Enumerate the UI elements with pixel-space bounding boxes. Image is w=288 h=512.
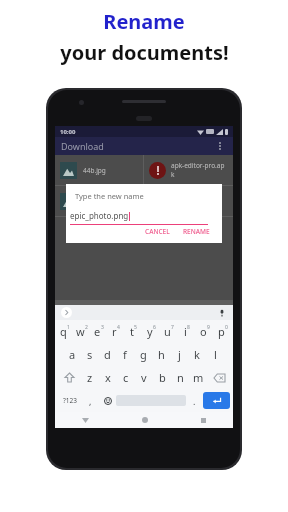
button[interactable]: h <box>152 343 170 366</box>
button[interactable]: Emoji <box>99 389 116 412</box>
button[interactable]: More options <box>213 139 227 153</box>
staticText: k <box>194 347 200 362</box>
staticText: p <box>218 324 225 339</box>
staticText: 0 <box>225 324 228 331</box>
staticText: v <box>141 370 147 385</box>
staticText: b <box>159 370 166 385</box>
staticText: i <box>184 324 187 339</box>
staticText: 9 <box>207 324 210 331</box>
button[interactable] <box>55 186 143 216</box>
button[interactable]: 44b.jpg <box>55 155 143 185</box>
button[interactable]: c <box>117 366 135 389</box>
staticText: m <box>193 370 204 385</box>
button[interactable]: g <box>134 343 152 366</box>
button[interactable]: p <box>214 320 232 343</box>
button[interactable]: o <box>196 320 214 343</box>
staticText: Rename <box>103 8 185 35</box>
staticText: 4 <box>117 324 120 331</box>
staticText: , <box>89 395 92 407</box>
staticText: 10:00 <box>60 128 76 136</box>
staticText: a <box>69 347 76 362</box>
staticText: t <box>130 324 134 339</box>
staticText: epic_photo.png <box>70 210 129 221</box>
staticText: z <box>87 370 93 385</box>
button[interactable]: Recents <box>174 412 233 428</box>
button[interactable]: e <box>90 320 107 343</box>
button[interactable]: u <box>160 320 178 343</box>
button[interactable]: q <box>56 320 73 343</box>
staticText: n <box>177 370 184 385</box>
staticText: u <box>164 324 171 339</box>
staticText: g <box>140 347 147 362</box>
staticText: 44b.jpg <box>83 166 106 175</box>
staticText: 5 <box>134 324 137 331</box>
button[interactable]: s <box>81 343 98 366</box>
button[interactable]: l <box>206 343 224 366</box>
button[interactable]: i <box>178 320 196 343</box>
staticText: y <box>147 324 153 339</box>
button[interactable]: r <box>107 320 124 343</box>
staticText: e <box>94 324 101 339</box>
staticText: x <box>105 370 111 385</box>
button[interactable]: ?123 <box>58 389 82 412</box>
button[interactable]: w <box>73 320 90 343</box>
button[interactable]: z <box>81 366 99 389</box>
button[interactable]: y <box>142 320 160 343</box>
staticText: your documents! <box>60 39 229 66</box>
button[interactable]: n <box>171 366 189 389</box>
button[interactable]: Back <box>55 412 115 428</box>
staticText: w <box>76 324 85 339</box>
button[interactable]: Expand <box>61 307 72 318</box>
button[interactable]: . <box>186 389 203 412</box>
button[interactable]: Enter <box>203 392 230 409</box>
button[interactable]: b <box>153 366 171 389</box>
button[interactable]: v <box>135 366 153 389</box>
staticText: q <box>60 324 67 339</box>
staticText: r <box>112 324 117 339</box>
staticText: c <box>123 370 129 385</box>
button[interactable]: RENAME <box>180 225 213 238</box>
button[interactable]: j <box>170 343 188 366</box>
staticText: 2 <box>85 324 88 331</box>
staticText: RENAME <box>183 227 210 236</box>
staticText: h <box>158 347 165 362</box>
button[interactable]: apk-editor-pro.ap k <box>144 155 233 185</box>
button[interactable]: f <box>116 343 134 366</box>
staticText: 3 <box>101 324 104 331</box>
staticText: s <box>87 347 93 362</box>
staticText: CANCEL <box>145 227 170 236</box>
button[interactable]: k <box>188 343 206 366</box>
staticText: 6 <box>153 324 156 331</box>
button[interactable]: Home <box>115 412 174 428</box>
staticText: apk-editor-pro.ap k <box>171 161 225 179</box>
button[interactable] <box>144 186 233 216</box>
button[interactable]: m <box>189 366 207 389</box>
button[interactable]: Backspace <box>207 366 231 389</box>
button[interactable]: t <box>124 320 142 343</box>
staticText: d <box>104 347 111 362</box>
button[interactable]: a <box>64 343 81 366</box>
staticText: 7 <box>171 324 174 331</box>
button[interactable]: Shift <box>57 366 81 389</box>
staticText: j <box>178 347 181 362</box>
staticText: Type the new name <box>75 191 144 201</box>
staticText: o <box>200 324 207 339</box>
staticText: 1 <box>67 324 70 331</box>
button[interactable]: d <box>98 343 116 366</box>
staticText: . <box>193 395 196 407</box>
button[interactable]: CANCEL <box>142 225 173 238</box>
button[interactable]: x <box>99 366 117 389</box>
staticText: l <box>214 347 217 362</box>
button[interactable]: , <box>82 389 99 412</box>
button[interactable]: Voice input <box>216 307 227 318</box>
staticText: 8 <box>187 324 190 331</box>
staticText: f <box>123 347 127 362</box>
staticText: Download <box>61 140 104 152</box>
staticText: ?123 <box>63 396 77 405</box>
